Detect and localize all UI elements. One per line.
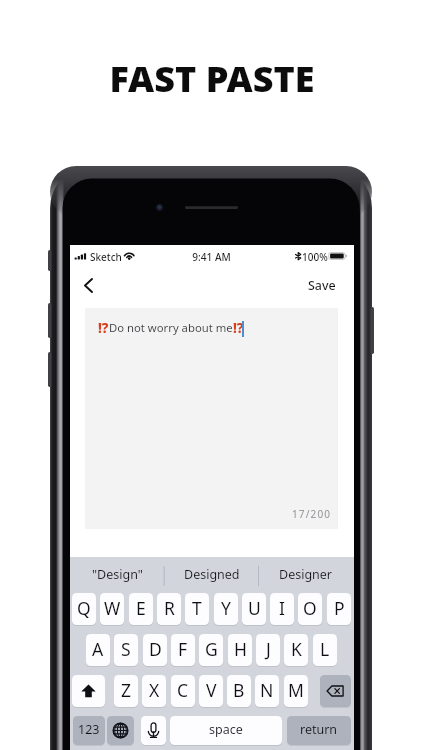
staticText: Save [308,277,336,294]
staticText: T [192,596,202,620]
staticText: L [320,637,330,661]
staticText: Designer [279,566,333,583]
button[interactable]: W [100,593,124,625]
staticText: O [303,596,317,620]
button[interactable]: Q [72,593,96,625]
button[interactable]: "Design" [71,561,164,587]
staticText: Designed [184,566,240,583]
button[interactable]: C [171,675,195,707]
button[interactable]: F [171,634,195,666]
staticText: V [206,678,217,702]
button[interactable]: Switch keyboard [107,716,134,745]
button[interactable]: L [313,634,337,666]
staticText: X [149,678,160,702]
staticText: C [177,678,189,702]
button[interactable]: E [129,593,153,625]
staticText: 123 [78,721,100,738]
staticText: Y [221,596,231,620]
button[interactable]: H [228,634,252,666]
button[interactable]: Designed [165,561,258,587]
staticText: Z [121,678,132,702]
staticText: "Design" [92,566,143,583]
staticText: 9:41 AM [70,250,353,264]
button[interactable]: Backspace [320,675,351,707]
staticText: J [266,637,271,661]
staticText: D [149,637,162,661]
button[interactable]: I [270,593,294,625]
staticText: W [104,596,121,620]
button[interactable]: Shift [72,675,105,707]
button[interactable]: Y [214,593,238,625]
button[interactable]: N [255,675,279,707]
button[interactable]: Z [114,675,138,707]
button[interactable]: J [256,634,280,666]
button[interactable]: 123 [73,716,105,745]
button[interactable]: X [142,675,166,707]
button[interactable]: Dictate [141,716,166,745]
button[interactable]: U [242,593,266,625]
staticText: 17/200 [292,507,332,521]
staticText: E [136,596,146,620]
button[interactable]: Designer [259,561,352,587]
staticText: I [279,596,285,620]
staticText: Do not worry about me [109,320,233,335]
button[interactable]: M [284,675,308,707]
button[interactable]: R [157,593,181,625]
staticText: R [164,596,175,620]
staticText: U [248,596,261,620]
button[interactable]: return [287,716,351,745]
staticText: return [300,721,338,738]
staticText: A [92,637,104,661]
button[interactable]: A [86,634,110,666]
button[interactable]: T [185,593,209,625]
staticText: space [209,721,243,738]
button[interactable]: O [298,593,322,625]
staticText: G [205,637,218,661]
staticText: Sketch [90,250,122,264]
staticText: 100% [302,250,328,264]
staticText: B [233,678,245,702]
staticText: K [291,637,302,661]
staticText: F [178,637,188,661]
staticText: P [334,596,345,620]
staticText: Q [77,596,91,620]
button[interactable]: space [170,716,282,745]
button[interactable]: K [284,634,308,666]
staticText: S [121,637,131,661]
button[interactable]: Back [76,274,102,296]
staticText: !? [233,319,244,337]
button[interactable]: V [199,675,223,707]
button[interactable]: Save [302,275,342,295]
button[interactable] [85,308,338,529]
button[interactable]: S [114,634,138,666]
staticText: !? [98,319,109,337]
staticText: M [288,678,304,702]
button[interactable]: D [143,634,167,666]
button[interactable]: B [227,675,251,707]
button[interactable]: G [199,634,223,666]
button[interactable]: P [327,593,351,625]
staticText: N [260,678,274,702]
staticText: FAST PASTE [1,54,422,750]
staticText: H [234,637,247,661]
